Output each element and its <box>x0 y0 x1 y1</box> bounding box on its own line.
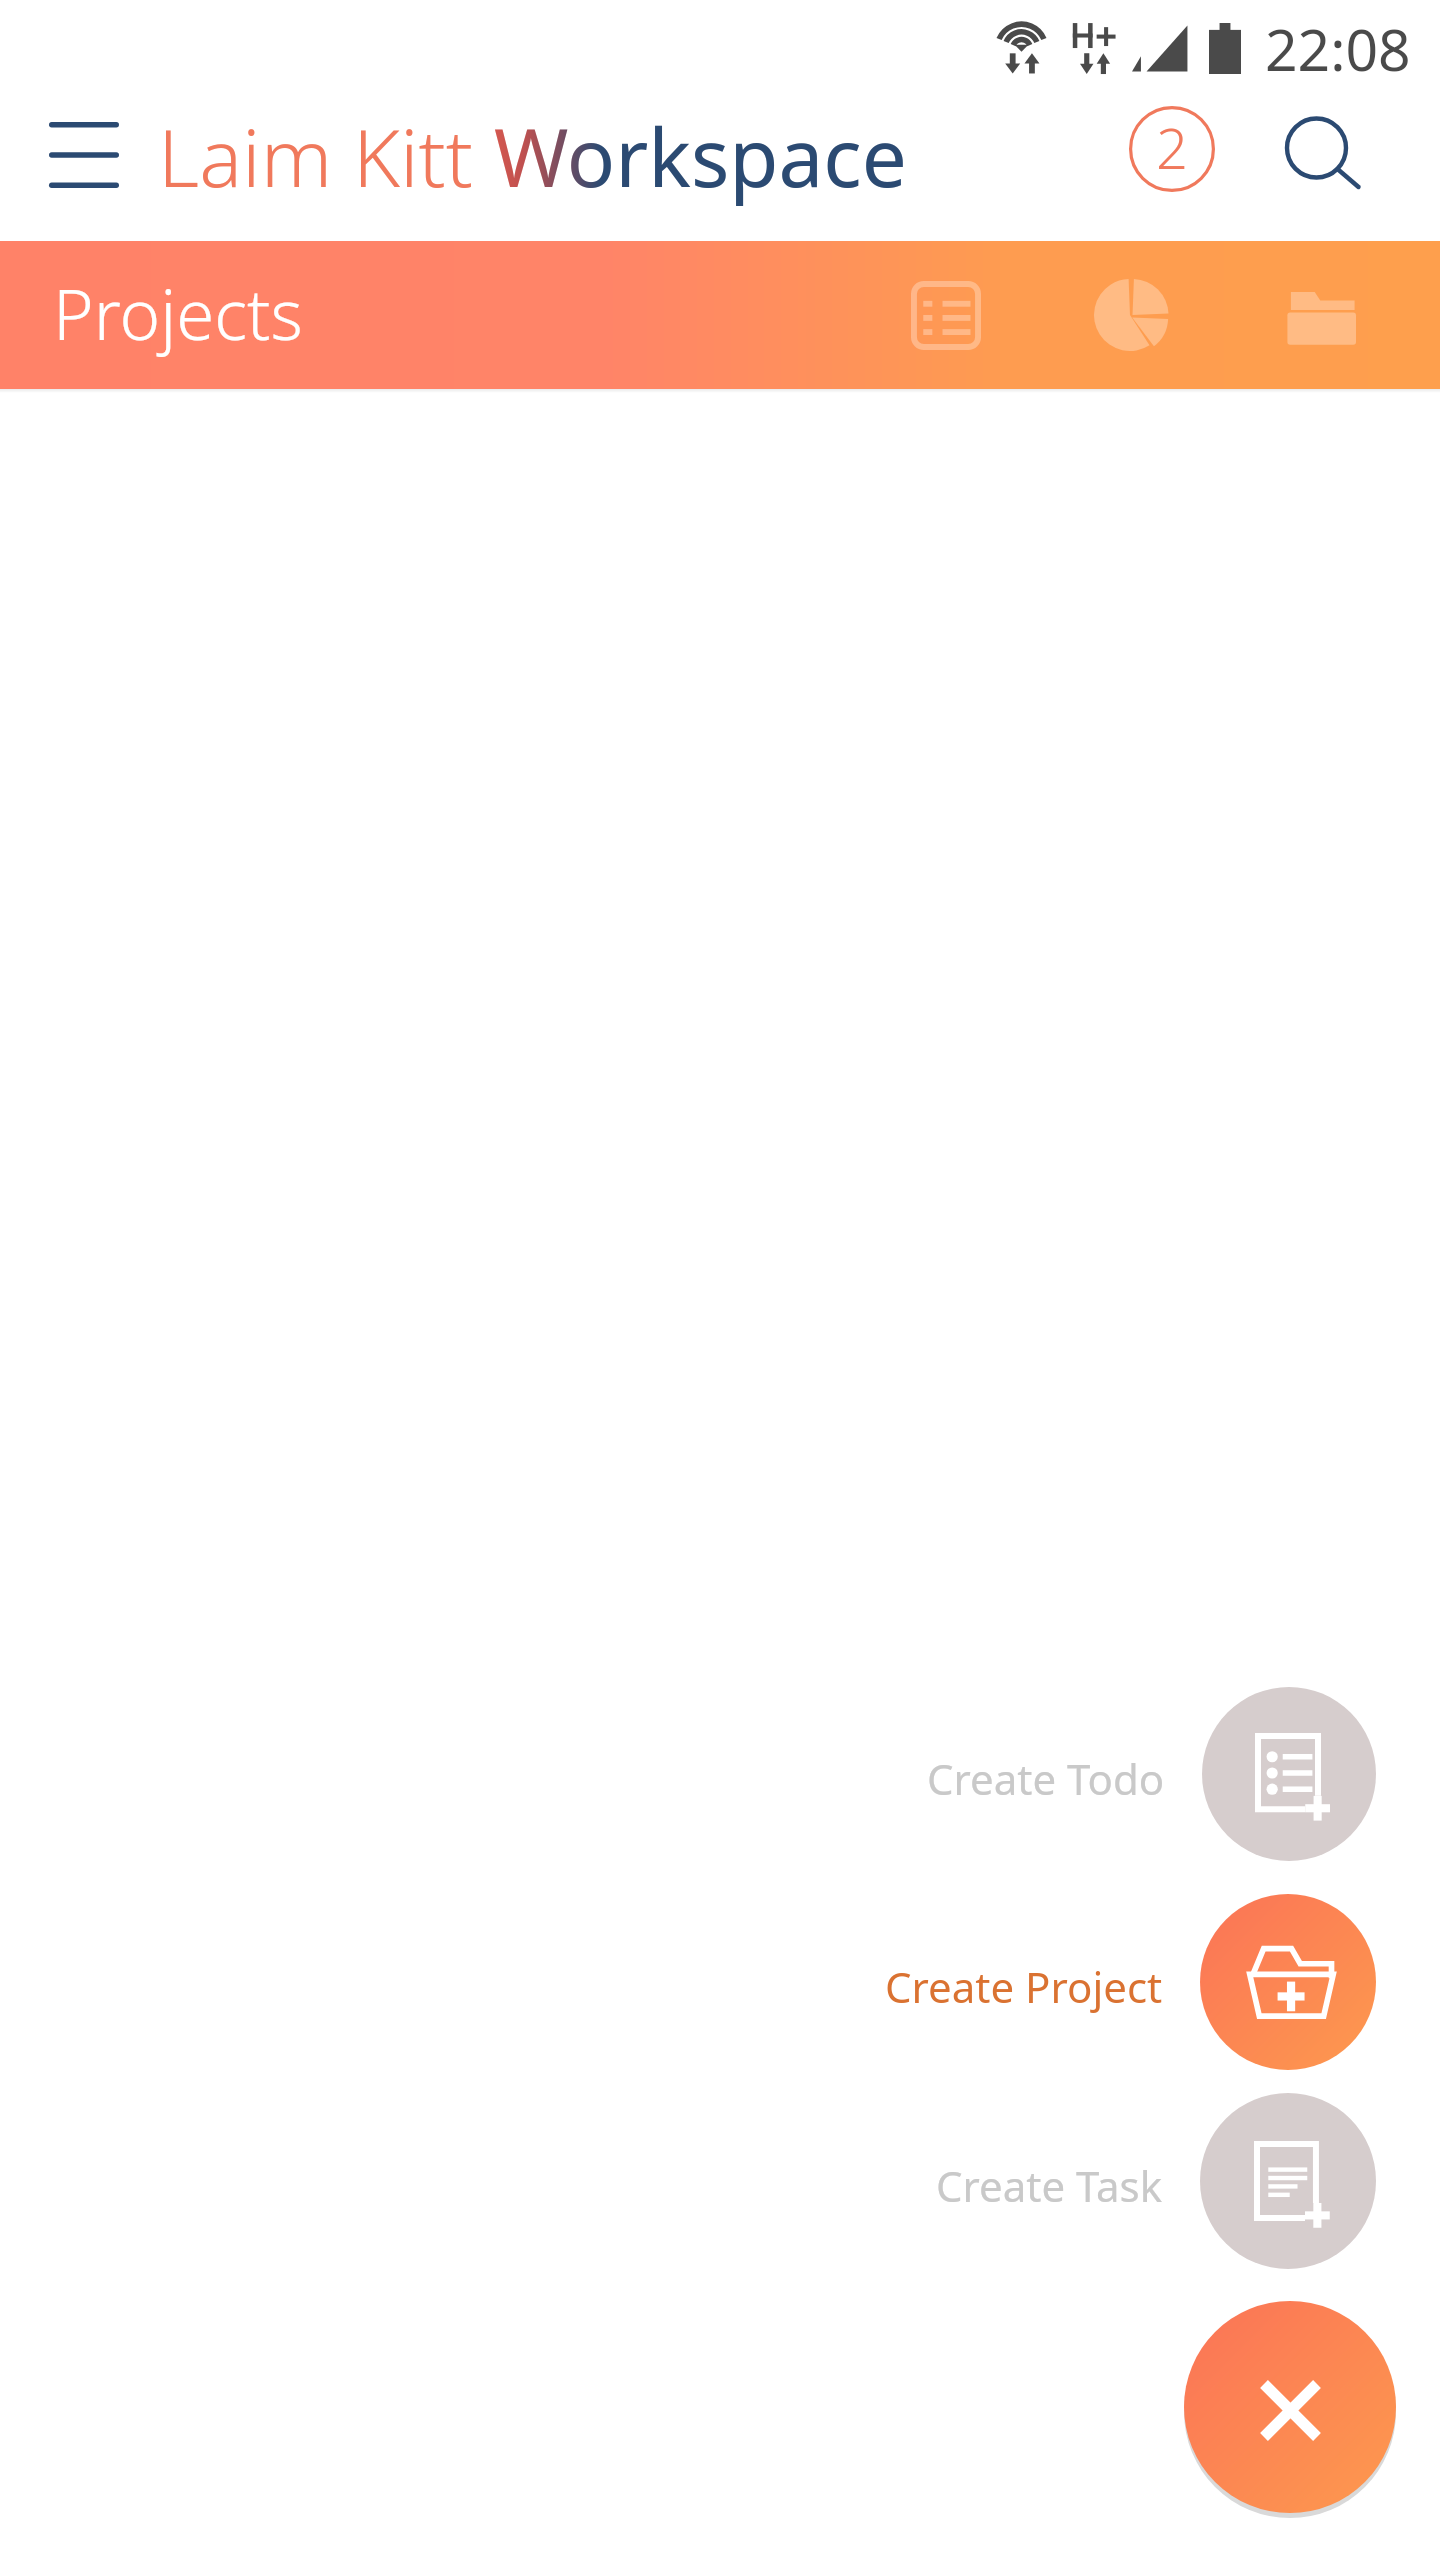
staticText: Create Project <box>885 1958 1163 2015</box>
button[interactable]: Create Task <box>1200 2093 1376 2269</box>
button[interactable]: Close menu <box>1184 2301 1396 2513</box>
button[interactable]: Projects <box>1231 241 1411 389</box>
staticText: Laim Kitt <box>158 101 494 210</box>
button[interactable]: Notifications <box>1102 79 1242 219</box>
button[interactable]: Create Project <box>1200 1894 1376 2070</box>
staticText: 22:08 <box>1265 10 1411 88</box>
staticText: Create Task <box>936 2157 1163 2214</box>
button[interactable]: Search <box>1256 75 1386 215</box>
staticText: Workspace <box>494 101 907 210</box>
button[interactable]: Menu <box>9 82 159 228</box>
staticText: Create Todo <box>927 1750 1165 1807</box>
staticText: Projects <box>53 266 303 360</box>
button[interactable]: Statistics <box>1040 241 1220 389</box>
button[interactable]: Create Todo <box>927 1687 1165 1861</box>
button[interactable]: Create Task <box>936 2093 1163 2269</box>
button[interactable]: Create Todo <box>1202 1687 1376 1861</box>
button[interactable]: Create Project <box>885 1894 1163 2070</box>
button[interactable]: Todos <box>856 241 1036 389</box>
staticText: 2 <box>1156 109 1188 185</box>
